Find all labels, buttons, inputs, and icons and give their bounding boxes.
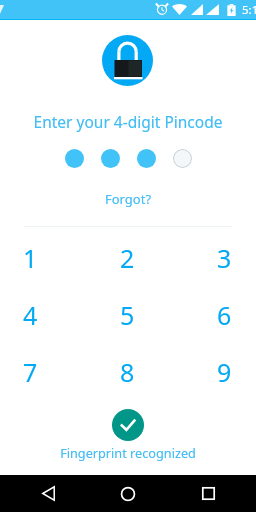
staticText: Fingerprint recognized <box>0 444 256 461</box>
staticText: 4 <box>23 298 38 332</box>
staticText: 2 <box>120 241 135 275</box>
staticText: 7 <box>23 355 38 389</box>
button[interactable]: 1 <box>0 229 61 286</box>
staticText: 8 <box>120 355 135 389</box>
button[interactable]: Back <box>8 475 88 512</box>
button[interactable]: Recents <box>168 475 248 512</box>
staticText: 5 <box>120 298 135 332</box>
staticText: 5:16 <box>242 2 256 18</box>
button[interactable]: 3 <box>194 229 254 286</box>
button[interactable]: Forgot? <box>97 188 160 210</box>
button[interactable]: 5 <box>61 286 194 343</box>
button[interactable]: 7 <box>0 343 61 400</box>
button[interactable]: 6 <box>194 286 254 343</box>
button[interactable]: 4 <box>0 286 61 343</box>
staticText: 9 <box>217 355 232 389</box>
staticText: 6 <box>217 298 232 332</box>
staticText: 3 <box>217 241 232 275</box>
button[interactable]: Home <box>88 475 168 512</box>
button[interactable]: Fingerprint recognized <box>112 409 144 441</box>
button[interactable]: 8 <box>61 343 194 400</box>
staticText: Forgot? <box>105 190 152 208</box>
staticText: 1 <box>23 241 38 275</box>
button[interactable]: 9 <box>194 343 254 400</box>
button[interactable]: 2 <box>61 229 194 286</box>
staticText: Enter your 4-digit Pincode <box>0 111 256 132</box>
